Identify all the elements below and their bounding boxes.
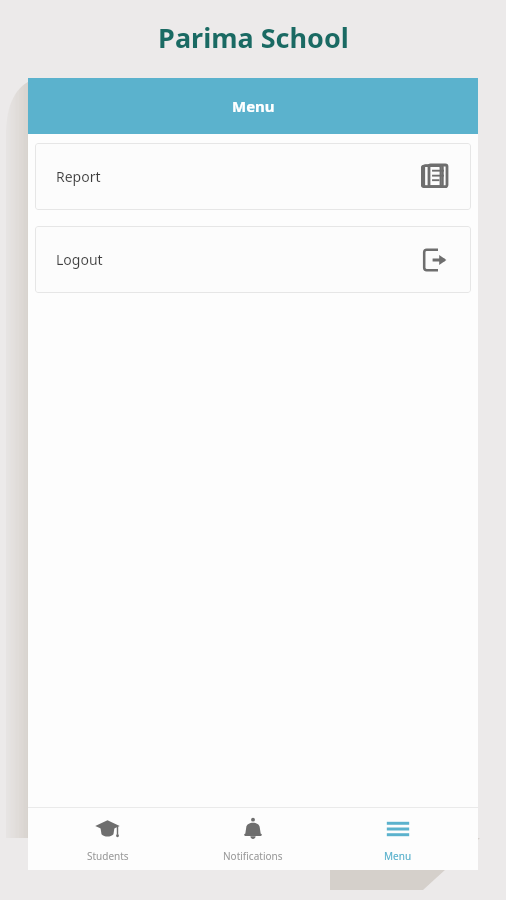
staticText: Menu [232,96,275,116]
other: Notifications [240,816,266,842]
button[interactable]: Notifications [188,808,318,870]
staticText: Notifications [223,849,283,863]
button[interactable]: Report [35,143,471,210]
other: Menu [385,816,411,842]
button[interactable]: Logout [35,226,471,293]
other: Students [95,816,121,842]
button[interactable]: Menu [333,808,463,870]
staticText: Students [87,849,129,863]
staticText: Logout [56,250,103,269]
staticText: Report [56,167,101,186]
staticText: Parima School [158,19,349,56]
button[interactable]: Students [43,808,173,870]
staticText: Menu [384,849,412,863]
